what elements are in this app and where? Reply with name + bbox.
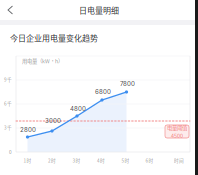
staticText: 用电量（kW·h） xyxy=(22,57,63,65)
staticText: 今日企业用电量变化趋势 xyxy=(10,32,98,44)
staticText: 7800 xyxy=(120,80,135,87)
staticText: 2800 xyxy=(20,126,36,133)
staticText: 5时 xyxy=(121,157,129,164)
button[interactable]: Back xyxy=(0,0,19,20)
staticText: 2时 xyxy=(48,157,56,164)
staticText: 日电量明细 xyxy=(79,4,119,16)
staticText: 4500 xyxy=(171,131,183,139)
staticText: 1时 xyxy=(23,157,31,164)
staticText: 4时 xyxy=(97,157,105,164)
staticText: 3千 xyxy=(4,124,12,131)
staticText: 0 xyxy=(9,148,12,155)
staticText: 3时 xyxy=(72,157,80,164)
staticText: 6时 xyxy=(145,157,153,164)
staticText: 电量阈值 xyxy=(167,124,187,131)
staticText: 4800 xyxy=(70,105,86,112)
staticText: 9千 xyxy=(4,76,12,83)
staticText: 3000 xyxy=(45,117,61,124)
staticText: 6800 xyxy=(95,88,111,95)
staticText: 时间 xyxy=(174,157,184,164)
staticText: 6千 xyxy=(4,100,12,107)
